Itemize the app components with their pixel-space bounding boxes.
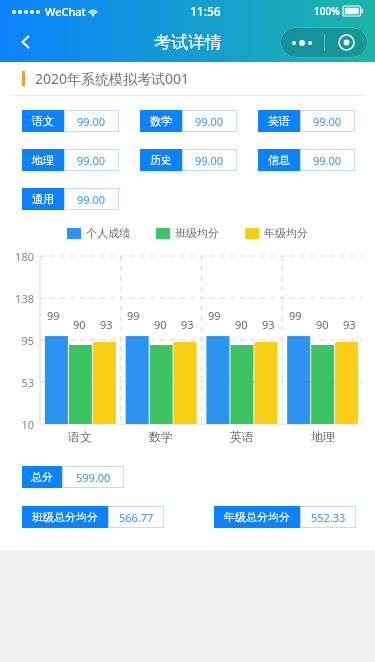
staticText: 90 [316, 317, 329, 332]
staticText: 99.00 [313, 153, 342, 168]
staticText: 地理 [32, 153, 54, 167]
staticText: 99 [127, 308, 140, 323]
button[interactable]: More options [280, 27, 368, 58]
button[interactable]: 班级总分均分 [22, 506, 164, 528]
staticText: 99.00 [195, 153, 224, 168]
staticText: 语文 [68, 429, 92, 444]
staticText: 11:56 [190, 3, 221, 19]
button[interactable]: 英语 [258, 110, 355, 132]
staticText: 180 [0, 249, 34, 264]
staticText: WeChat [45, 4, 86, 19]
staticText: 138 [0, 291, 34, 306]
staticText: 99.00 [77, 192, 106, 207]
staticText: 总分 [31, 470, 53, 484]
staticText: 历史 [150, 153, 172, 167]
staticText: 2020年系统模拟考试001 [35, 69, 190, 88]
staticText: 信息 [268, 153, 290, 167]
staticText: 90 [235, 317, 248, 332]
staticText: 566.77 [119, 510, 154, 525]
button[interactable]: 总分 [22, 466, 124, 488]
staticText: 99.00 [313, 114, 342, 129]
staticText: 100% [314, 4, 340, 18]
staticText: 英语 [268, 114, 290, 128]
staticText: 英语 [230, 429, 254, 444]
staticText: 99 [289, 308, 302, 323]
staticText: 10 [0, 417, 34, 432]
staticText: 53 [0, 375, 34, 390]
button[interactable]: 数学 [140, 110, 237, 132]
staticText: 93 [100, 317, 113, 332]
staticText: 地理 [311, 429, 335, 444]
button[interactable]: 语文 [22, 110, 119, 132]
staticText: 班级总分均分 [32, 510, 98, 524]
staticText: 99 [47, 308, 60, 323]
staticText: 班级均分 [175, 226, 219, 240]
button[interactable]: 年级总分均分 [214, 506, 356, 528]
staticText: 年级总分均分 [224, 510, 290, 524]
staticText: 99.00 [77, 153, 106, 168]
staticText: 99.00 [77, 114, 106, 129]
staticText: 93 [181, 317, 194, 332]
staticText: 93 [262, 317, 275, 332]
staticText: 考试详情 [154, 32, 222, 53]
button[interactable]: 信息 [258, 149, 355, 171]
staticText: 数学 [150, 114, 172, 128]
staticText: 99 [208, 308, 221, 323]
staticText: 年级均分 [264, 226, 308, 240]
button[interactable]: Back [8, 24, 44, 60]
staticText: 90 [73, 317, 86, 332]
staticText: 语文 [32, 114, 54, 128]
button[interactable]: 历史 [140, 149, 237, 171]
staticText: 个人成绩 [86, 226, 130, 240]
staticText: 数学 [149, 429, 173, 444]
button[interactable]: 地理 [22, 149, 119, 171]
staticText: 通用 [32, 192, 54, 206]
staticText: 552.33 [311, 510, 346, 525]
staticText: 99.00 [195, 114, 224, 129]
staticText: 95 [0, 333, 34, 348]
staticText: 90 [154, 317, 167, 332]
staticText: 599.00 [76, 470, 111, 485]
button[interactable]: 通用 [22, 188, 119, 210]
staticText: 93 [343, 317, 356, 332]
